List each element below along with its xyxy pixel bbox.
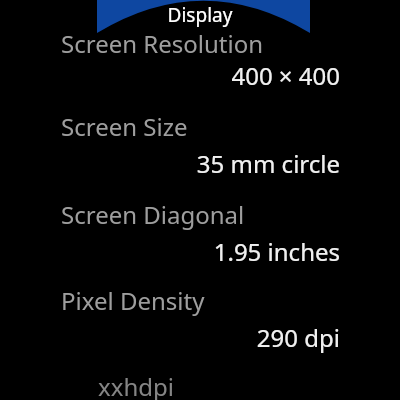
staticText: 1.95 inches	[16, 235, 340, 268]
staticText: 290 dpi	[16, 321, 340, 354]
staticText: Screen Diagonal	[61, 198, 384, 231]
button[interactable]	[0, 278, 400, 353]
button[interactable]	[0, 104, 400, 179]
staticText: xxhdpi	[98, 370, 384, 400]
button[interactable]	[0, 21, 400, 91]
staticText: Pixel Density	[61, 284, 384, 317]
staticText: 35 mm circle	[16, 147, 340, 180]
staticText: Screen Size	[61, 110, 384, 143]
staticText: Screen Resolution	[61, 27, 384, 60]
staticText: 400 × 400	[16, 59, 340, 92]
button[interactable]	[0, 368, 400, 400]
button[interactable]	[0, 192, 400, 267]
staticText: Display	[0, 2, 400, 28]
